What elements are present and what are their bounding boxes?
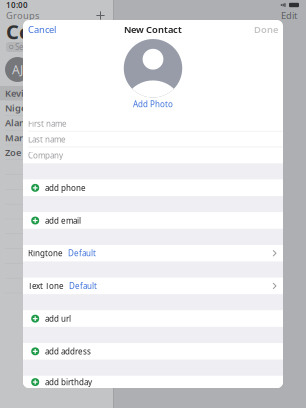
staticText: Ringtone bbox=[28, 248, 63, 258]
button[interactable]: Done bbox=[249, 20, 283, 38]
staticText: Text Tone bbox=[28, 281, 64, 291]
button[interactable]: Edit bbox=[281, 9, 297, 22]
button[interactable]: Cancel bbox=[23, 20, 61, 38]
staticText: New Contact bbox=[124, 23, 182, 36]
staticText: Search bbox=[15, 42, 40, 52]
staticText: 10:00 bbox=[6, 0, 28, 10]
button[interactable]: Add Photo bbox=[124, 39, 182, 97]
button[interactable]: add email bbox=[23, 212, 283, 229]
staticText: add phone bbox=[45, 182, 86, 193]
button[interactable]: Ringtone bbox=[23, 245, 283, 261]
staticText: Cancel bbox=[28, 23, 56, 36]
staticText: Company bbox=[28, 150, 63, 161]
button[interactable]: Groups bbox=[6, 9, 39, 22]
button[interactable]: add phone bbox=[23, 180, 283, 196]
staticText: Contacts bbox=[6, 18, 95, 45]
staticText: add url bbox=[45, 313, 71, 324]
staticText: add address bbox=[45, 346, 91, 357]
staticText: add email bbox=[45, 215, 81, 226]
button[interactable]: Text Tone bbox=[23, 278, 283, 294]
staticText: add birthday bbox=[45, 377, 92, 387]
staticText: Add Photo bbox=[133, 99, 173, 109]
staticText: Default bbox=[68, 248, 96, 258]
staticText: Zoe Ta bbox=[5, 146, 33, 159]
button[interactable]: Add Photo bbox=[130, 99, 176, 109]
staticText: Alan J bbox=[5, 117, 30, 129]
staticText: Last name bbox=[28, 134, 66, 145]
staticText: First name bbox=[28, 118, 67, 129]
button[interactable]: Add contact bbox=[96, 11, 105, 20]
staticText: Done bbox=[254, 23, 278, 36]
staticText: Nigel bbox=[5, 102, 29, 114]
staticText: Edit bbox=[281, 9, 297, 22]
staticText: Maria bbox=[5, 131, 31, 144]
button[interactable]: add birthday bbox=[23, 376, 283, 388]
button[interactable]: add url bbox=[23, 310, 283, 327]
staticText: Default bbox=[69, 281, 97, 291]
staticText: AJ bbox=[12, 61, 23, 77]
button[interactable]: add address bbox=[23, 343, 283, 360]
staticText: Groups bbox=[6, 9, 39, 22]
staticText: Kevin bbox=[5, 87, 30, 99]
